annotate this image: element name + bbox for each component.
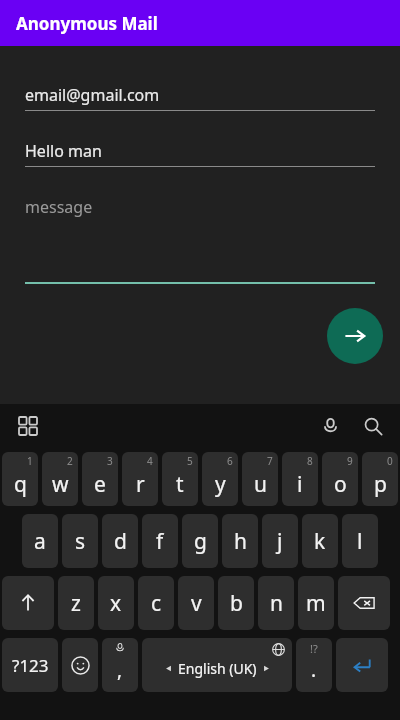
- staticText: g: [194, 527, 207, 556]
- staticText: o: [334, 470, 347, 499]
- button[interactable]: v: [178, 576, 214, 630]
- button[interactable]: !?: [296, 638, 332, 692]
- button[interactable]: s: [62, 514, 98, 568]
- button[interactable]: a: [22, 514, 58, 568]
- staticText: 2: [67, 454, 73, 468]
- staticText: f: [156, 527, 164, 556]
- staticText: y: [215, 470, 226, 499]
- staticText: t: [176, 470, 184, 499]
- button[interactable]: Send: [327, 308, 383, 364]
- staticText: 7: [267, 454, 273, 468]
- staticText: email@gmail.com: [25, 84, 160, 106]
- button[interactable]: Keyboard modes: [13, 411, 43, 441]
- staticText: h: [234, 527, 247, 556]
- button[interactable]: 5: [162, 452, 198, 506]
- button[interactable]: Hello man: [25, 140, 375, 162]
- staticText: message: [25, 196, 93, 218]
- button[interactable]: l: [342, 514, 378, 568]
- staticText: ?123: [12, 654, 49, 677]
- staticText: 1: [27, 454, 33, 468]
- button[interactable]: English (UK): [142, 638, 292, 692]
- button[interactable]: 7: [242, 452, 278, 506]
- staticText: i: [297, 470, 303, 499]
- button[interactable]: 2: [42, 452, 78, 506]
- staticText: d: [114, 527, 127, 556]
- staticText: u: [254, 470, 267, 499]
- staticText: c: [151, 589, 162, 618]
- button[interactable]: ?123: [2, 638, 58, 692]
- staticText: b: [230, 589, 243, 618]
- staticText: !?: [310, 641, 318, 656]
- button[interactable]: Backspace: [338, 576, 390, 630]
- staticText: v: [191, 589, 202, 618]
- staticText: l: [357, 527, 363, 556]
- staticText: .: [311, 657, 317, 683]
- staticText: 5: [187, 454, 193, 468]
- button[interactable]: Emoji: [62, 638, 98, 692]
- button[interactable]: n: [258, 576, 294, 630]
- staticText: 4: [147, 454, 153, 468]
- staticText: 9: [347, 454, 353, 468]
- staticText: z: [71, 589, 81, 618]
- button[interactable]: 3: [82, 452, 118, 506]
- staticText: 0: [387, 454, 393, 468]
- button[interactable]: c: [138, 576, 174, 630]
- button[interactable]: h: [222, 514, 258, 568]
- button[interactable]: Search: [358, 411, 388, 441]
- button[interactable]: message: [25, 196, 375, 218]
- staticText: r: [136, 470, 145, 499]
- staticText: e: [94, 470, 106, 499]
- staticText: English (UK): [178, 659, 257, 678]
- staticText: p: [374, 470, 387, 499]
- button[interactable]: email@gmail.com: [25, 84, 375, 106]
- staticText: s: [75, 527, 86, 556]
- staticText: n: [270, 589, 283, 618]
- button[interactable]: Voice input: [315, 411, 345, 441]
- button[interactable]: 6: [202, 452, 238, 506]
- button[interactable]: m: [298, 576, 334, 630]
- button[interactable]: x: [98, 576, 134, 630]
- button[interactable]: ,: [102, 638, 138, 692]
- staticText: j: [277, 527, 283, 556]
- button[interactable]: 9: [322, 452, 358, 506]
- button[interactable]: 4: [122, 452, 158, 506]
- staticText: x: [110, 589, 122, 618]
- button[interactable]: k: [302, 514, 338, 568]
- button[interactable]: 0: [362, 452, 398, 506]
- button[interactable]: g: [182, 514, 218, 568]
- staticText: Anonymous Mail: [16, 12, 158, 35]
- button[interactable]: b: [218, 576, 254, 630]
- button[interactable]: Enter: [336, 638, 388, 692]
- staticText: Hello man: [25, 140, 102, 162]
- button[interactable]: Anonymous Mail: [0, 0, 400, 46]
- button[interactable]: d: [102, 514, 138, 568]
- staticText: w: [52, 470, 69, 499]
- button[interactable]: Shift: [2, 576, 54, 630]
- button[interactable]: j: [262, 514, 298, 568]
- staticText: 8: [307, 454, 313, 468]
- button[interactable]: 1: [2, 452, 38, 506]
- button[interactable]: 8: [282, 452, 318, 506]
- staticText: ,: [117, 657, 123, 683]
- button[interactable]: z: [58, 576, 94, 630]
- staticText: q: [14, 470, 27, 499]
- staticText: a: [34, 527, 46, 556]
- staticText: 6: [227, 454, 233, 468]
- staticText: 3: [107, 454, 113, 468]
- staticText: k: [314, 527, 326, 556]
- button[interactable]: f: [142, 514, 178, 568]
- staticText: m: [306, 589, 326, 618]
